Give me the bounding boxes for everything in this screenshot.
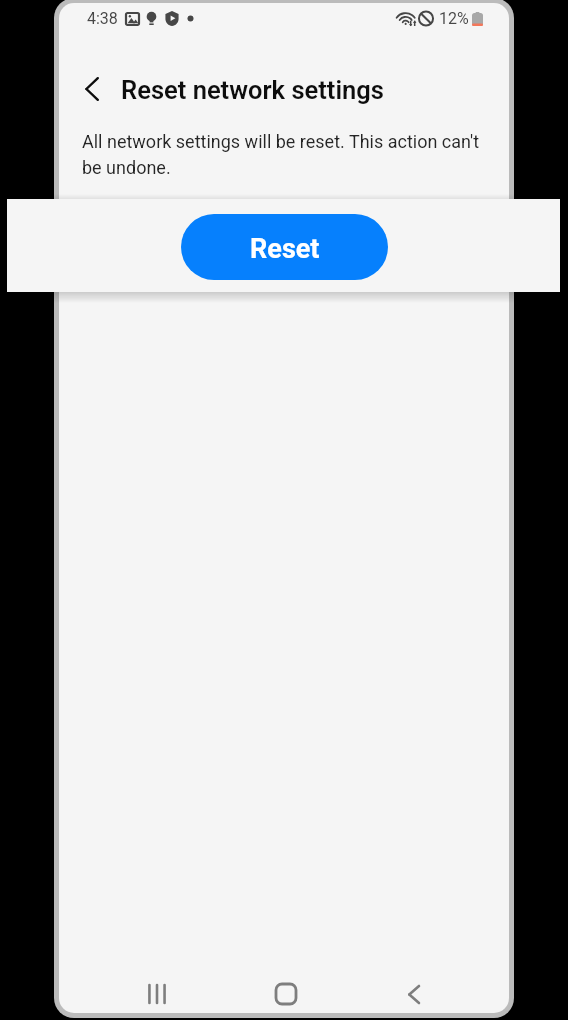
staticText: Reset [250, 233, 320, 265]
staticText: 4:38 [87, 9, 118, 28]
staticText: All network settings will be reset. This… [82, 131, 491, 178]
button[interactable]: Back [393, 974, 433, 1013]
button[interactable]: Back [72, 70, 112, 110]
button[interactable]: Home [266, 974, 306, 1013]
staticText: Reset network settings [121, 75, 384, 105]
button[interactable]: Reset [181, 214, 388, 280]
button[interactable]: Recent apps [137, 974, 177, 1013]
staticText: 12% [439, 9, 469, 28]
